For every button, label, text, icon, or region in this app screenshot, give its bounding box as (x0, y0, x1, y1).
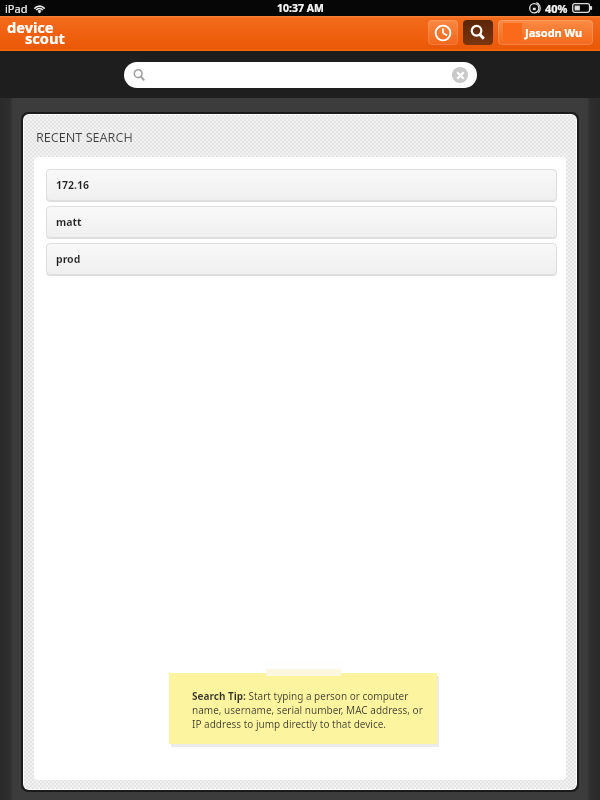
button[interactable]: Jasodn Wu (498, 20, 593, 45)
staticText: 172.16 (56, 178, 89, 192)
button[interactable]: 172.16 (46, 169, 557, 201)
button[interactable]: matt (46, 206, 557, 238)
staticText: 10:37 AM (277, 1, 324, 15)
staticText: scout (25, 28, 65, 48)
staticText: device (7, 17, 54, 37)
staticText: Jasodn Wu (525, 25, 583, 40)
button[interactable]: Search (463, 20, 493, 45)
staticText: prod (56, 252, 81, 266)
button[interactable]: prod (46, 243, 557, 275)
staticText: Search Tip: Start typing a person or com… (192, 689, 423, 731)
button[interactable]: Clear search (452, 67, 468, 83)
staticText: RECENT SEARCH (36, 129, 133, 146)
staticText: 40% (545, 1, 568, 16)
staticText: iPad (5, 1, 28, 16)
button[interactable]: Clear search (124, 62, 477, 88)
staticText: matt (56, 215, 82, 229)
button[interactable]: Recent history (428, 20, 458, 45)
